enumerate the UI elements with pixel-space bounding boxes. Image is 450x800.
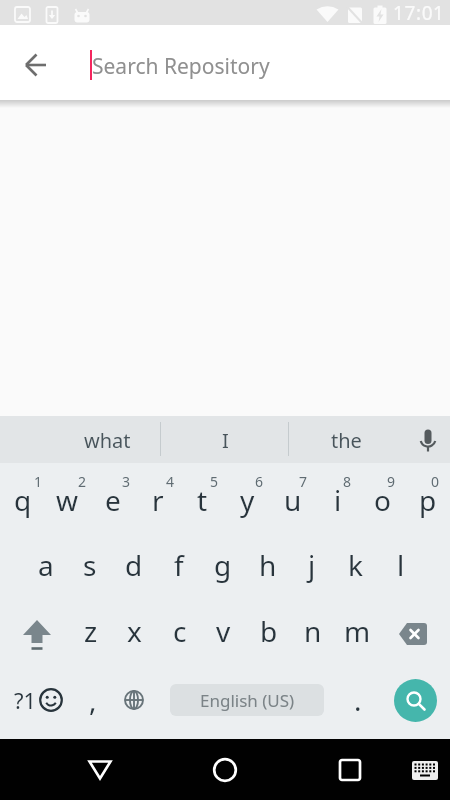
button[interactable]: v [201, 604, 246, 658]
button[interactable]: the [291, 417, 401, 464]
button[interactable]: w [45, 473, 90, 527]
staticText: s [83, 546, 97, 584]
staticText: p [419, 481, 437, 519]
staticText: m [344, 612, 371, 650]
button[interactable]: English (US) [170, 684, 324, 716]
button[interactable]: f [156, 538, 201, 592]
button[interactable] [394, 679, 437, 722]
button[interactable]: e [90, 473, 135, 527]
button[interactable]: h [245, 538, 290, 592]
staticText: g [214, 546, 232, 584]
button[interactable]: x [112, 604, 157, 658]
button[interactable]: j [289, 538, 334, 592]
staticText: , [89, 681, 97, 719]
staticText: h [259, 546, 277, 584]
button[interactable]: t [180, 473, 225, 527]
button[interactable]: s [67, 538, 112, 592]
staticText: o [374, 481, 391, 519]
button[interactable] [9, 607, 65, 661]
staticText: x [127, 612, 142, 650]
staticText: d [125, 546, 143, 584]
button[interactable] [112, 678, 156, 722]
staticText: what [84, 427, 131, 454]
staticText: I [222, 427, 229, 454]
button[interactable] [405, 416, 450, 463]
staticText: a [38, 546, 54, 584]
staticText: the [331, 427, 362, 454]
button[interactable]: y [225, 473, 270, 527]
staticText: 9 [387, 472, 396, 490]
staticText: 6 [255, 472, 264, 490]
staticText: n [304, 612, 322, 650]
staticText: 17:01 [393, 0, 445, 25]
button[interactable]: Search Repository [92, 52, 270, 81]
staticText: v [216, 612, 231, 650]
staticText: 4 [166, 472, 175, 490]
staticText: b [260, 612, 278, 650]
staticText: . [354, 681, 362, 719]
button[interactable]: o [360, 473, 405, 527]
button[interactable]: k [333, 538, 378, 592]
button[interactable] [385, 607, 441, 661]
button[interactable]: n [290, 604, 335, 658]
staticText: 1 [34, 472, 43, 490]
button[interactable]: d [111, 538, 156, 592]
button[interactable]: u [270, 473, 315, 527]
button[interactable]: I [170, 417, 280, 464]
staticText: z [84, 612, 98, 650]
staticText: 3 [122, 472, 131, 490]
button[interactable]: . [335, 673, 380, 727]
staticText: w [56, 481, 79, 519]
staticText: c [173, 612, 187, 650]
button[interactable] [70, 739, 130, 800]
staticText: f [174, 546, 184, 584]
button[interactable]: i [315, 473, 360, 527]
staticText: j [308, 546, 316, 584]
staticText: 2 [78, 472, 87, 490]
staticText: 0 [431, 472, 440, 490]
staticText: ?1 [14, 685, 37, 715]
staticText: 7 [299, 472, 308, 490]
button[interactable]: ?1 [8, 673, 68, 727]
button[interactable]: c [157, 604, 202, 658]
button[interactable] [320, 739, 380, 800]
button[interactable] [12, 41, 60, 89]
staticText: q [14, 481, 32, 519]
button[interactable]: b [246, 604, 291, 658]
staticText: 8 [343, 472, 352, 490]
staticText: r [152, 481, 164, 519]
button[interactable] [195, 739, 255, 800]
staticText: u [284, 481, 302, 519]
button[interactable]: g [200, 538, 245, 592]
button[interactable] [400, 739, 450, 800]
button[interactable]: r [135, 473, 180, 527]
staticText: t [197, 481, 208, 519]
button[interactable]: what [52, 417, 162, 464]
staticText: y [240, 481, 255, 519]
button[interactable]: l [378, 538, 423, 592]
button[interactable]: m [335, 604, 380, 658]
button[interactable]: z [68, 604, 113, 658]
button[interactable]: p [405, 473, 450, 527]
staticText: e [105, 481, 121, 519]
button[interactable]: a [23, 538, 68, 592]
staticText: k [348, 546, 363, 584]
staticText: i [334, 481, 342, 519]
staticText: l [397, 546, 405, 584]
staticText: English (US) [200, 689, 295, 712]
staticText: 5 [210, 472, 219, 490]
button[interactable]: , [70, 673, 115, 727]
button[interactable]: q [0, 473, 45, 527]
